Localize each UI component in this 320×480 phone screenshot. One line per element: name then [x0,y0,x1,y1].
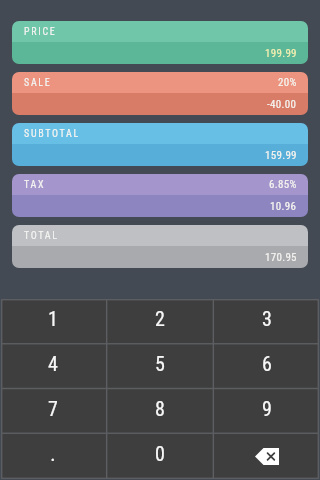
button[interactable]: SUBTOTAL [12,123,308,166]
staticText: 170.95 [265,251,297,264]
staticText: 6.85% [269,178,297,191]
button[interactable]: 7 [0,389,106,434]
button[interactable]: 3 [213,299,320,344]
button[interactable]: 5 [106,344,213,389]
staticText: 8 [155,397,165,420]
staticText: 7 [48,397,58,420]
staticText: -40.00 [267,98,297,111]
button[interactable]: 6 [213,344,320,389]
staticText: 5 [155,352,165,375]
button[interactable]: SALE [12,72,308,115]
button[interactable]: 8 [106,389,213,434]
staticText: 20% [278,76,297,89]
staticText: 2 [155,307,165,330]
button[interactable]: 4 [0,344,106,389]
button[interactable]: TOTAL [12,225,308,268]
button[interactable]: . [0,434,106,479]
staticText: 10.96 [270,200,297,213]
button[interactable]: 2 [106,299,213,344]
button[interactable]: TAX [12,174,308,217]
button[interactable]: 9 [213,389,320,434]
staticText: 1 [48,307,58,330]
staticText: 6 [262,352,272,375]
staticText: TOTAL [24,230,59,242]
staticText: 159.99 [265,149,297,162]
staticText: . [50,442,56,465]
button[interactable]: Delete [213,434,320,479]
staticText: 9 [262,397,272,420]
staticText: 4 [48,352,58,375]
staticText: 0 [155,442,165,465]
button[interactable]: 0 [106,434,213,479]
staticText: SALE [24,77,52,89]
staticText: SUBTOTAL [24,128,81,140]
button[interactable]: 1 [0,299,106,344]
staticText: 199.99 [265,47,297,60]
staticText: TAX [24,179,46,191]
button[interactable]: PRICE [12,21,308,64]
staticText: 3 [262,307,272,330]
staticText: PRICE [24,26,57,38]
